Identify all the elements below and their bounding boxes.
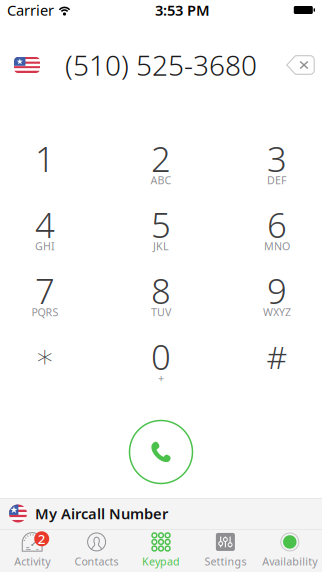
staticText: 6: [267, 201, 287, 247]
staticText: 3:53 PM: [155, 0, 210, 20]
staticText: (510) 525-3680: [65, 46, 257, 84]
button[interactable]: ★: [0, 498, 322, 529]
button[interactable]: 2: [116, 147, 206, 185]
button[interactable]: Contacts: [64, 529, 129, 571]
button[interactable]: 2: [0, 529, 64, 571]
button[interactable]: ∗: [0, 345, 90, 383]
staticText: PQRS: [31, 305, 58, 319]
button[interactable]: 3: [232, 147, 322, 185]
staticText: GHI: [35, 239, 55, 253]
button[interactable]: 5: [116, 213, 206, 251]
staticText: Activity: [14, 554, 50, 569]
button[interactable]: Settings: [193, 529, 258, 571]
staticText: ★: [16, 57, 23, 66]
staticText: TUV: [151, 305, 171, 319]
button[interactable]: #: [232, 345, 322, 383]
staticText: MNO: [264, 239, 290, 253]
staticText: 4: [35, 201, 55, 247]
button[interactable]: 6: [232, 213, 322, 251]
staticText: ∗: [35, 338, 55, 375]
button[interactable]: 8: [116, 279, 206, 317]
staticText: +: [158, 371, 164, 385]
button[interactable]: 7: [0, 279, 90, 317]
staticText: 1: [35, 135, 55, 181]
staticText: ★: [10, 504, 18, 515]
staticText: 3: [267, 135, 287, 181]
staticText: #: [266, 335, 287, 378]
staticText: 2: [151, 135, 171, 181]
button[interactable]: 9: [232, 279, 322, 317]
staticText: My Aircall Number: [35, 504, 168, 523]
staticText: Contacts: [75, 554, 119, 569]
button[interactable]: Availability: [258, 529, 322, 571]
staticText: 7: [35, 267, 55, 313]
staticText: WXYZ: [263, 305, 291, 319]
staticText: DEF: [267, 173, 287, 187]
staticText: 2: [38, 530, 46, 548]
button[interactable]: 1: [0, 147, 90, 185]
button[interactable]: 4: [0, 213, 90, 251]
staticText: 5: [151, 201, 171, 247]
button[interactable]: Keypad: [129, 529, 193, 571]
staticText: Settings: [204, 554, 246, 569]
staticText: 8: [151, 267, 171, 313]
staticText: ABC: [150, 173, 171, 187]
button[interactable]: Delete: [264, 42, 322, 88]
staticText: Keypad: [142, 554, 180, 569]
staticText: Availability: [262, 554, 317, 569]
staticText: 0: [151, 333, 171, 379]
button[interactable]: 0: [116, 345, 206, 383]
staticText: 9: [267, 267, 287, 313]
button[interactable]: Select country: [0, 42, 58, 88]
button[interactable]: Call: [128, 419, 194, 485]
staticText: Carrier: [7, 0, 54, 20]
staticText: JKL: [153, 239, 169, 253]
